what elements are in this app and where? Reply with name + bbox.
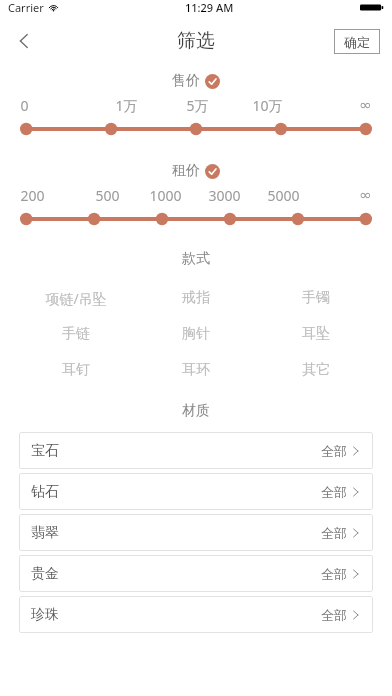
button[interactable]: Selected [205, 74, 220, 89]
staticText: Carrier [8, 0, 44, 15]
button[interactable]: 胸针 [136, 316, 256, 352]
staticText: 10万 [252, 96, 283, 115]
staticText: 手链 [62, 325, 90, 343]
staticText: 钻石 [31, 483, 59, 501]
staticText: 租价 [172, 162, 200, 180]
staticText: 11:29 AM [185, 0, 234, 15]
button[interactable]: Range slider [0, 120, 392, 138]
staticText: 全部 [321, 443, 347, 459]
button[interactable]: 手链 [16, 316, 136, 352]
button[interactable]: Range slider [0, 210, 392, 228]
staticText: 全部 [321, 607, 347, 623]
staticText: 5000 [267, 186, 300, 205]
staticText: 全部 [321, 484, 347, 500]
button[interactable]: 戒指 [136, 280, 256, 316]
staticText: 项链/吊坠 [45, 289, 107, 308]
staticText: 0 [20, 96, 29, 115]
staticText: ∞ [359, 186, 372, 203]
staticText: 200 [20, 186, 45, 205]
staticText: 材质 [182, 402, 210, 420]
staticText: 全部 [321, 525, 347, 541]
staticText: 售价 [172, 72, 200, 90]
staticText: 耳坠 [302, 325, 330, 343]
button[interactable]: 耳环 [136, 352, 256, 388]
staticText: 款式 [182, 250, 210, 268]
staticText: 手镯 [302, 289, 330, 307]
button[interactable]: 翡翠 [19, 514, 373, 551]
button[interactable]: 耳坠 [256, 316, 376, 352]
button[interactable]: 珍珠 [19, 596, 373, 633]
staticText: 500 [95, 186, 120, 205]
staticText: 其它 [302, 361, 330, 379]
button[interactable]: 钻石 [19, 473, 373, 510]
staticText: 3000 [208, 186, 241, 205]
staticText: 贵金 [31, 565, 59, 583]
staticText: ∞ [359, 96, 372, 113]
staticText: 胸针 [182, 325, 210, 343]
button[interactable]: 其它 [256, 352, 376, 388]
staticText: 筛选 [177, 29, 215, 53]
button[interactable]: 确定 [334, 29, 380, 54]
button[interactable]: Back [6, 23, 42, 59]
button[interactable]: 耳钉 [16, 352, 136, 388]
staticText: 耳钉 [62, 361, 90, 379]
button[interactable]: 项链/吊坠 [16, 280, 136, 316]
button[interactable]: 贵金 [19, 555, 373, 592]
staticText: 1万 [115, 96, 138, 115]
staticText: 5万 [186, 96, 209, 115]
button[interactable]: 宝石 [19, 432, 373, 469]
staticText: 全部 [321, 566, 347, 582]
staticText: 1000 [149, 186, 182, 205]
staticText: 耳环 [182, 361, 210, 379]
staticText: 确定 [344, 34, 370, 50]
staticText: 珍珠 [31, 606, 59, 624]
staticText: 宝石 [31, 442, 59, 460]
button[interactable]: 手镯 [256, 280, 376, 316]
staticText: 翡翠 [31, 524, 59, 542]
staticText: 戒指 [182, 289, 210, 307]
button[interactable]: Selected [205, 164, 220, 179]
